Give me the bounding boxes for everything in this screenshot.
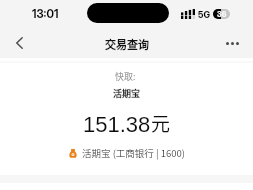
staticText: 元 xyxy=(151,109,171,137)
staticText: 快取: xyxy=(115,70,136,83)
staticText: 36 xyxy=(217,10,227,19)
staticText: 交易查询 xyxy=(105,36,149,52)
button[interactable]: 活期宝 (工商银行 | 1600) xyxy=(0,146,253,160)
staticText: 13:01 xyxy=(32,7,59,21)
staticText: 活期宝 xyxy=(113,87,141,100)
button[interactable]: More options xyxy=(220,31,245,55)
staticText: 5G xyxy=(198,9,211,20)
staticText: 151.38 xyxy=(83,112,151,137)
button[interactable]: Back xyxy=(6,30,32,56)
staticText: 活期宝 (工商银行 | 1600) xyxy=(82,146,185,160)
